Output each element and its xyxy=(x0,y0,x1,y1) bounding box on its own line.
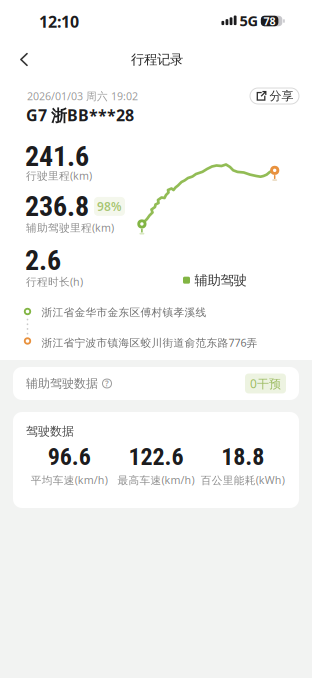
staticText: 浙江省宁波市镇海区蛟川街道俞范东路776弄 xyxy=(41,335,257,350)
button[interactable]: Back xyxy=(8,43,40,75)
staticText: G7 浙BB***28 xyxy=(26,104,134,126)
staticText: 122.6 xyxy=(128,443,183,471)
button[interactable]: 辅助驾驶数据 xyxy=(13,367,299,400)
staticText: 驾驶数据 xyxy=(26,424,74,439)
staticText: 98% xyxy=(97,198,122,214)
staticText: 236.8 xyxy=(25,190,89,223)
staticText: 2.6 xyxy=(25,244,61,277)
staticText: 浙江省金华市金东区傅村镇孝溪线 xyxy=(41,306,206,319)
staticText: 18.8 xyxy=(221,443,264,471)
staticText: 辅助驾驶里程(km) xyxy=(26,220,114,235)
staticText: 0干预 xyxy=(250,375,281,391)
staticText: 96.6 xyxy=(48,443,91,471)
staticText: 12:10 xyxy=(39,11,79,32)
staticText: 78 xyxy=(264,14,276,28)
staticText: 分享 xyxy=(269,89,293,103)
staticText: 行程时长(h) xyxy=(26,274,83,289)
staticText: 平均车速(km/h) xyxy=(31,473,108,487)
staticText: 241.6 xyxy=(25,140,89,173)
staticText: 5G xyxy=(239,11,258,30)
staticText: ? xyxy=(105,378,109,389)
staticText: 行程记录 xyxy=(131,51,183,68)
staticText: 2026/01/03 周六 19:02 xyxy=(27,89,138,103)
staticText: 辅助驾驶数据 xyxy=(26,376,98,391)
staticText: 辅助驾驶 xyxy=(194,272,246,288)
button[interactable]: 分享 xyxy=(249,87,299,104)
staticText: 最高车速(km/h) xyxy=(117,473,194,487)
staticText: 百公里能耗(kWh) xyxy=(201,473,285,487)
staticText: 行驶里程(km) xyxy=(26,168,92,183)
